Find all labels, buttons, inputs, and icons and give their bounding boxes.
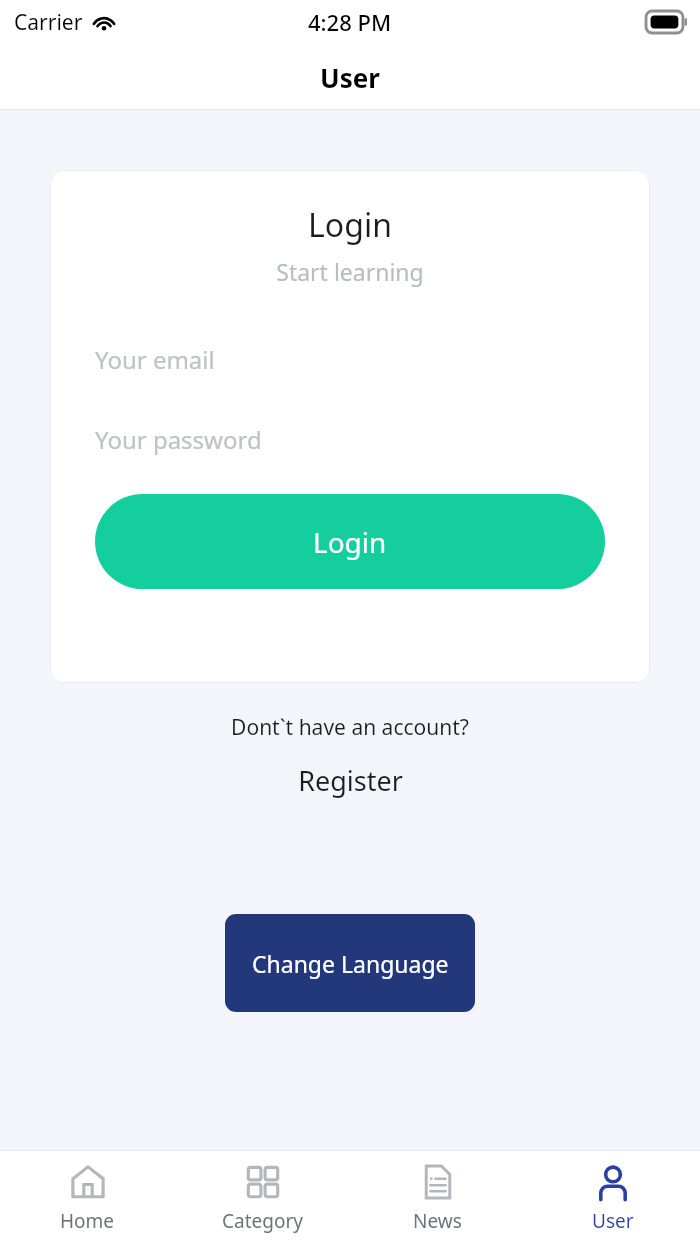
staticText: Home: [60, 1208, 115, 1234]
button[interactable]: Login: [95, 494, 605, 589]
staticText: Carrier: [14, 8, 83, 37]
staticText: Change Language: [252, 948, 449, 979]
staticText: News: [413, 1208, 462, 1234]
staticText: Start learning: [50, 256, 650, 287]
staticText: User: [320, 60, 380, 95]
button[interactable]: News: [350, 1151, 525, 1244]
button[interactable]: Home: [0, 1151, 175, 1244]
staticText: 4:28 PM: [308, 7, 392, 37]
button[interactable]: Your password: [50, 412, 650, 466]
button[interactable]: Register: [298, 762, 403, 799]
button[interactable]: Category: [175, 1151, 350, 1244]
button[interactable]: Your email: [50, 332, 650, 386]
button[interactable]: Change Language: [225, 914, 475, 1012]
button[interactable]: User: [525, 1151, 700, 1244]
staticText: Your email: [95, 343, 215, 376]
staticText: Register: [298, 762, 403, 799]
staticText: Your password: [95, 423, 262, 456]
staticText: Category: [222, 1208, 303, 1234]
staticText: User: [592, 1208, 634, 1234]
staticText: Login: [50, 203, 650, 247]
staticText: Dont`t have an account?: [0, 713, 700, 742]
staticText: Login: [313, 523, 387, 561]
